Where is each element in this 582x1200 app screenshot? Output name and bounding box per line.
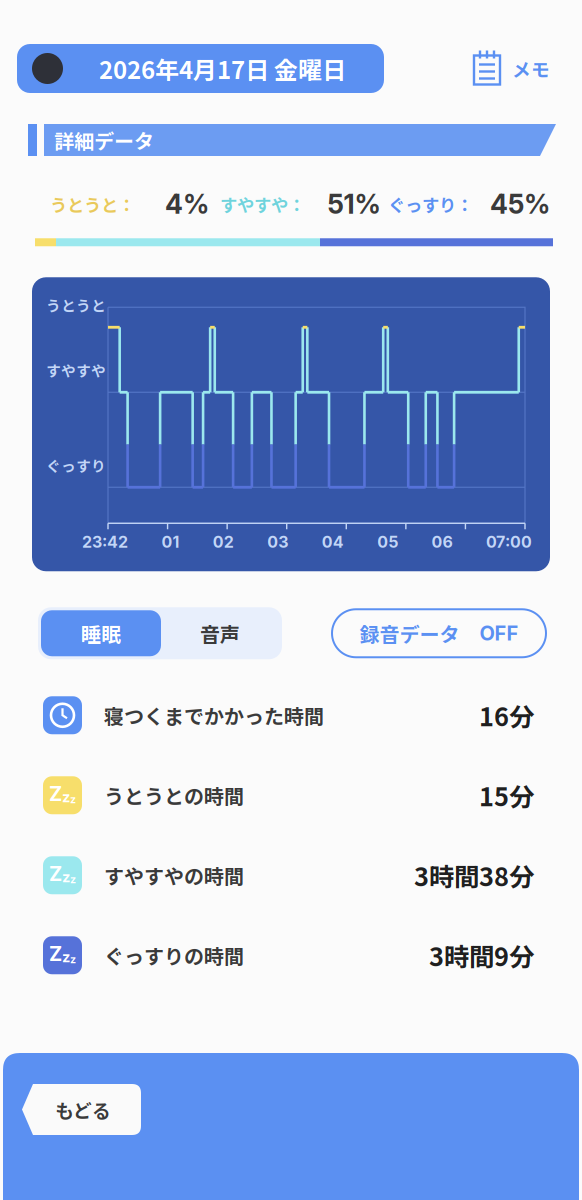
button[interactable]: 2026年4月17日 金曜日 [28,44,395,93]
button[interactable]: Z [0,915,582,995]
staticText: 02 [213,532,234,552]
staticText: 4% [165,188,209,220]
staticText: Z [49,942,62,966]
button[interactable]: 睡眠 [41,610,161,656]
staticText: ぐっすり [46,455,106,476]
button[interactable]: Z [0,755,582,835]
staticText: ぐっすり： [388,192,473,217]
staticText: 03 [267,532,288,552]
staticText: OFF [479,621,518,645]
staticText: 睡眠 [81,619,121,648]
staticText: すやすや： [220,192,305,217]
staticText: z [62,788,70,806]
staticText: 06 [432,532,453,552]
staticText: 01 [161,532,179,552]
staticText: 3時間38分 [414,857,534,894]
staticText: メモ [512,55,550,82]
staticText: z [62,948,70,966]
button[interactable]: 寝つくまでかかった時間 [0,675,582,755]
staticText: 録音データ [359,619,459,648]
button[interactable]: もどる [0,1084,582,1135]
staticText: 04 [322,532,344,552]
staticText: Z [49,862,62,886]
staticText: うとうとの時間 [104,781,244,810]
staticText: すやすやの時間 [104,861,244,890]
staticText: z [70,873,76,886]
staticText: 05 [377,532,398,552]
staticText: 45% [490,188,550,220]
staticText: 15分 [479,777,534,814]
button[interactable]: メモ [471,49,550,87]
staticText: z [70,793,76,806]
staticText: 23:42 [82,532,128,552]
staticText: 寝つくまでかかった時間 [104,701,324,730]
button[interactable]: 音声 [161,610,279,656]
staticText: 3時間9分 [429,937,534,974]
staticText: 詳細データ [54,125,154,154]
staticText: Z [49,782,62,806]
staticText: 16分 [479,697,534,734]
staticText: うとうと： [50,192,135,217]
staticText: 2026年4月17日 金曜日 [99,51,346,86]
staticText: うとうと [46,294,106,315]
staticText: 51% [327,188,380,220]
staticText: 音声 [200,619,240,648]
staticText: z [62,868,70,886]
button[interactable]: 録音データ [332,609,546,657]
staticText: 07:00 [486,532,532,552]
staticText: ぐっすりの時間 [104,941,244,970]
staticText: z [70,953,76,966]
staticText: もどる [55,1096,111,1123]
staticText: すやすや [46,359,106,381]
button[interactable]: Z [0,835,582,915]
